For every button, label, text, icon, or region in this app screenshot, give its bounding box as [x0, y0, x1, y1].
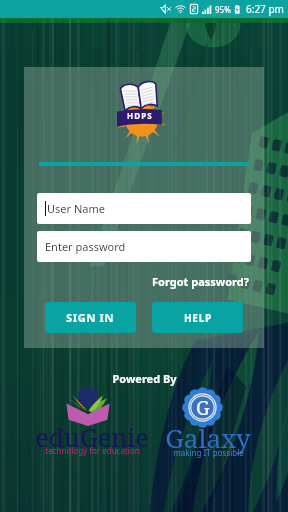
staticText: technology for education	[45, 445, 140, 456]
button[interactable]: Forgot password?	[134, 273, 249, 289]
staticText: Galaxy	[165, 420, 251, 455]
staticText: SIGN IN	[66, 310, 115, 325]
staticText: Forgot password?	[152, 274, 249, 289]
staticText: 6:27 pm	[246, 2, 284, 16]
staticText: making IT possible	[173, 447, 244, 458]
staticText: Powered By	[112, 371, 177, 386]
staticText: G	[196, 395, 210, 421]
staticText: eduGenie	[35, 420, 149, 454]
staticText: HELP	[184, 311, 212, 325]
staticText: 95%	[215, 4, 231, 15]
button[interactable]: User Name	[37, 193, 251, 224]
button[interactable]: HELP	[152, 302, 243, 333]
staticText: User Name	[47, 201, 105, 216]
staticText: Enter password	[45, 239, 126, 254]
button[interactable]: SIGN IN	[45, 302, 136, 333]
button[interactable]: Enter password	[37, 231, 251, 262]
staticText: HDPS	[127, 110, 153, 121]
